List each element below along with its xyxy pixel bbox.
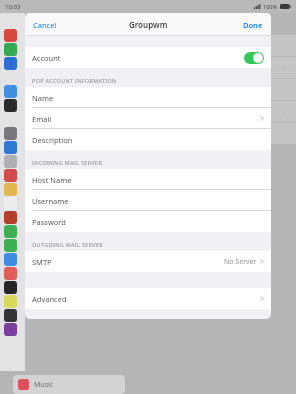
- staticText: OUTGOING MAIL SERVER: [32, 241, 103, 248]
- button[interactable]: SMTP: [25, 251, 271, 272]
- button[interactable]: Username: [25, 190, 271, 211]
- button[interactable]: Host Name: [25, 169, 271, 190]
- staticText: Description: [32, 135, 73, 145]
- button[interactable]: Name: [25, 87, 271, 108]
- staticText: Music: [34, 380, 54, 390]
- staticText: INCOMING MAIL SERVER: [32, 159, 103, 166]
- staticText: Host Name: [32, 175, 72, 185]
- staticText: Advanced: [32, 294, 67, 304]
- staticText: Name: [32, 93, 54, 103]
- staticText: Groupwm: [129, 19, 168, 30]
- staticText: POP ACCOUNT INFORMATION: [32, 77, 117, 84]
- staticText: Cancel: [33, 20, 57, 30]
- button[interactable]: Email: [25, 108, 271, 129]
- staticText: Account: [32, 53, 61, 63]
- staticText: Done: [243, 20, 263, 30]
- button[interactable]: Description: [25, 129, 271, 150]
- button[interactable]: Done: [240, 16, 266, 34]
- button[interactable]: Advanced: [25, 288, 271, 309]
- staticText: 100%: [263, 3, 278, 10]
- button[interactable]: Password: [25, 211, 271, 232]
- staticText: Password: [32, 217, 66, 227]
- staticText: SMTP: [32, 257, 52, 267]
- staticText: 10:03: [5, 3, 21, 11]
- button[interactable]: Account: [25, 47, 271, 68]
- staticText: No Server: [224, 257, 257, 267]
- staticText: Email: [32, 114, 52, 124]
- staticText: Username: [32, 196, 69, 206]
- button[interactable]: Account on: [244, 52, 264, 64]
- button[interactable]: Cancel: [30, 16, 60, 34]
